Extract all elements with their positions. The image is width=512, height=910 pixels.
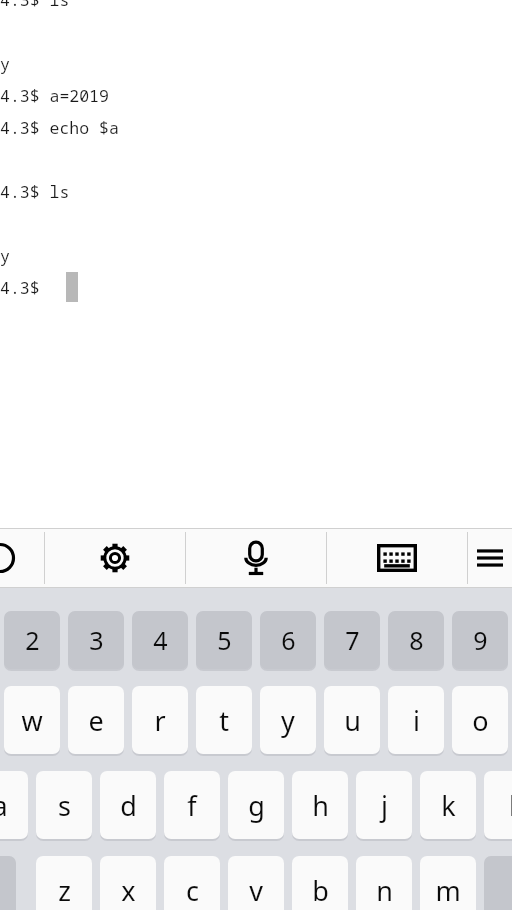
staticText: m [435,872,461,909]
staticText: g [248,787,265,824]
button[interactable]: 2 [4,611,60,669]
staticText: 4.3$ [0,276,40,298]
button[interactable]: f [164,771,220,839]
staticText: d [120,787,137,824]
staticText: u [344,702,361,739]
staticText: l [509,787,512,824]
button[interactable]: n [356,856,412,910]
button[interactable]: v [228,856,284,910]
staticText: 5 [217,623,232,657]
staticText: z [58,872,71,909]
button[interactable]: s [36,771,92,839]
button[interactable]: k [420,771,476,839]
button[interactable]: a [0,771,28,839]
button[interactable]: d [100,771,156,839]
staticText: n [376,872,393,909]
staticText: 6 [281,623,296,657]
staticText: 4.3$ ls [0,180,70,202]
button[interactable]: 6 [260,611,316,669]
button[interactable]: 9 [452,611,508,669]
button[interactable]: z [36,856,92,910]
button[interactable]: Menu [468,528,512,588]
staticText: 7 [345,623,360,657]
staticText: c [186,872,199,909]
button[interactable]: l [484,771,512,839]
button[interactable]: j [356,771,412,839]
button[interactable]: m [420,856,476,910]
staticText: k [441,787,456,824]
staticText: b [312,872,329,909]
button[interactable]: e [68,686,124,754]
staticText: y [0,244,10,266]
button[interactable]: Settings [45,528,185,588]
staticText: j [381,787,388,824]
button[interactable]: h [292,771,348,839]
staticText: a [0,787,8,824]
button[interactable]: b [292,856,348,910]
staticText: 4.3$ ls [0,0,70,10]
staticText: v [249,872,263,909]
button[interactable]: 3 [68,611,124,669]
staticText: 4 [153,623,168,657]
staticText: r [154,702,166,739]
button[interactable]: o [452,686,508,754]
button[interactable]: t [196,686,252,754]
staticText: 4.3$ a=2019 [0,84,109,106]
button[interactable]: g [228,771,284,839]
staticText: 8 [409,623,424,657]
staticText: e [88,702,104,739]
button[interactable]: Previous [0,528,22,588]
staticText: y [0,52,10,74]
button[interactable]: Switch keyboard [327,528,467,588]
button[interactable]: 8 [388,611,444,669]
staticText: x [121,872,136,909]
button[interactable]: Voice input [186,528,326,588]
staticText: s [58,787,71,824]
staticText: 2 [25,623,40,657]
button[interactable]: 7 [324,611,380,669]
button[interactable]: 5 [196,611,252,669]
button[interactable]: r [132,686,188,754]
staticText: f [187,787,197,824]
staticText: 4.3$ echo $a [0,116,119,138]
staticText: o [472,702,489,739]
button[interactable]: c [164,856,220,910]
staticText: t [219,702,229,739]
staticText: y [281,702,295,739]
button[interactable]: 4 [132,611,188,669]
button[interactable]: i [388,686,444,754]
staticText: 3 [89,623,104,657]
button[interactable]: y [260,686,316,754]
staticText: i [413,702,420,739]
staticText: 9 [473,623,488,657]
button[interactable]: u [324,686,380,754]
button[interactable]: w [4,686,60,754]
staticText: w [21,702,43,739]
staticText: h [312,787,329,824]
button[interactable]: x [100,856,156,910]
